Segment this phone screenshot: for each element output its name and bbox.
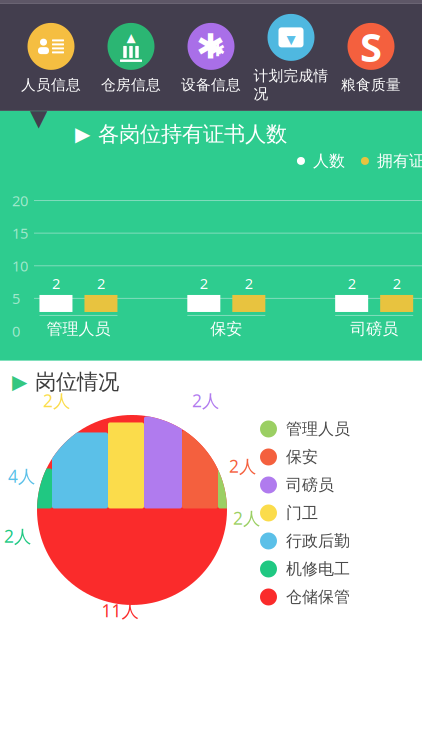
staticText: ▼ <box>30 105 47 131</box>
staticText: 0 <box>12 321 20 341</box>
staticText: ✱ <box>196 27 225 66</box>
button[interactable]: ❮ <box>0 0 139 4</box>
button[interactable]: 人员信息 <box>11 19 91 98</box>
button[interactable]: ▼ <box>251 10 331 107</box>
staticText: 15 <box>12 223 28 243</box>
staticText: 司磅员 <box>350 319 398 339</box>
staticText: ▶ <box>12 370 27 393</box>
button[interactable]: S <box>331 19 411 98</box>
staticText: 2人 <box>4 524 31 547</box>
staticText: 4人 <box>8 464 35 487</box>
staticText: ✱ <box>210 39 226 60</box>
staticText: 保安 <box>210 319 242 339</box>
staticText: 10 <box>12 256 28 275</box>
staticText: 11人 <box>101 599 138 622</box>
staticText: 2 <box>52 273 60 293</box>
staticText: 岗位情况 <box>35 369 119 395</box>
button[interactable]: ✱ <box>171 19 251 98</box>
staticText: 行政后勤 <box>286 531 350 551</box>
staticText: 2 <box>245 273 253 293</box>
staticText: 司磅员 <box>286 475 334 495</box>
staticText: 各岗位持有证书人数 <box>98 121 287 147</box>
button[interactable]: ▲ <box>91 19 171 98</box>
staticText: 2 <box>97 273 105 293</box>
staticText: 管理人员 <box>286 419 350 439</box>
staticText: 机修电工 <box>286 559 350 579</box>
staticText: 2人 <box>229 454 256 477</box>
staticText: 5 <box>12 289 20 308</box>
staticText: 门卫 <box>286 503 318 523</box>
staticText: 人数 <box>313 151 345 171</box>
staticText: 仓房信息 <box>101 76 161 94</box>
staticText: S <box>360 20 382 73</box>
staticText: 保安 <box>286 447 318 467</box>
staticText: 2 <box>200 273 208 293</box>
staticText: 20 <box>12 191 28 210</box>
staticText: 粮食质量 <box>341 76 401 94</box>
staticText: 拥有证书人数 <box>377 151 422 171</box>
staticText: 2 <box>348 273 356 293</box>
staticText: ▶ <box>75 123 90 145</box>
staticText: 设备信息 <box>181 76 241 94</box>
staticText: 计划完成情况 <box>253 67 328 103</box>
staticText: 2人 <box>233 506 260 529</box>
staticText: 仓储保管 <box>286 587 350 607</box>
staticText: 2人 <box>43 389 70 412</box>
staticText: 管理人员 <box>46 319 110 339</box>
staticText: 人员信息 <box>21 76 81 94</box>
staticText: ▼ <box>286 33 295 46</box>
staticText: 2人 <box>192 389 219 412</box>
staticText: 2 <box>393 273 401 293</box>
staticText: ▲ <box>126 31 135 44</box>
